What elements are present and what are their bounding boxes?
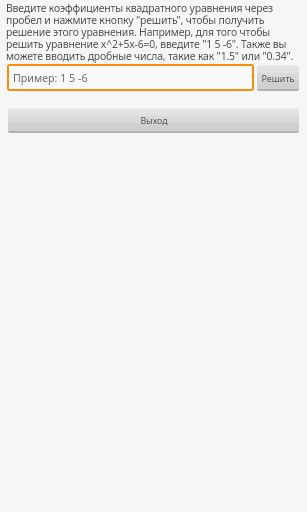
button[interactable]: Выход xyxy=(8,108,299,133)
staticText: Решить xyxy=(261,72,295,84)
button[interactable]: Пример: 1 5 -6 xyxy=(7,64,254,91)
staticText: Пример: 1 5 -6 xyxy=(13,71,88,86)
staticText: Введите коэффициенты квадратного уравнен… xyxy=(6,1,307,63)
button[interactable]: Решить xyxy=(257,65,299,91)
staticText: Выход xyxy=(140,115,168,127)
